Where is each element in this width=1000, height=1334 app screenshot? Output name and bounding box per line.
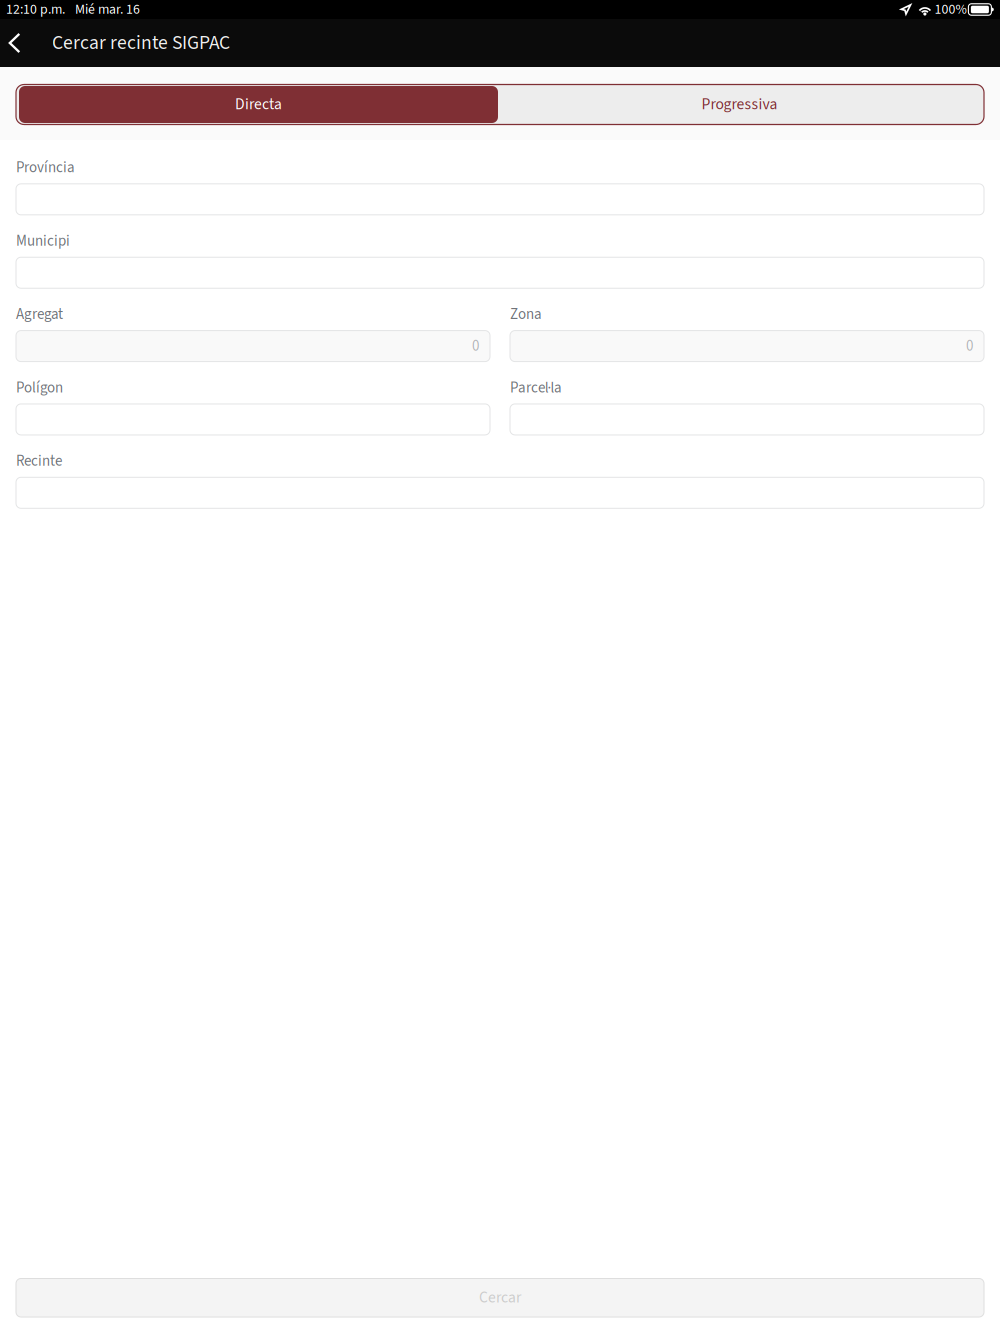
staticText: Recinte: [16, 450, 62, 472]
staticText: 0: [966, 335, 973, 357]
staticText: Província: [16, 157, 75, 178]
button[interactable]: Progressiva: [498, 86, 981, 123]
staticText: Cercar recinte SIGPAC: [52, 29, 230, 57]
staticText: Polígon: [16, 377, 63, 398]
staticText: Directa: [235, 93, 282, 116]
button[interactable]: Cercar: [16, 1278, 984, 1317]
staticText: 0: [472, 335, 479, 357]
staticText: Parcel·la: [510, 377, 562, 398]
staticText: Progressiva: [701, 93, 777, 116]
staticText: Municipi: [16, 230, 70, 252]
staticText: Agregat: [16, 304, 63, 325]
staticText: Zona: [510, 304, 542, 325]
staticText: Mié mar. 16: [75, 0, 140, 19]
button[interactable]: Directa: [19, 86, 498, 123]
staticText: 12:10 p.m.: [6, 0, 65, 19]
staticText: 100%: [934, 0, 966, 19]
button[interactable]: Back: [0, 19, 29, 67]
staticText: Cercar: [479, 1287, 521, 1309]
